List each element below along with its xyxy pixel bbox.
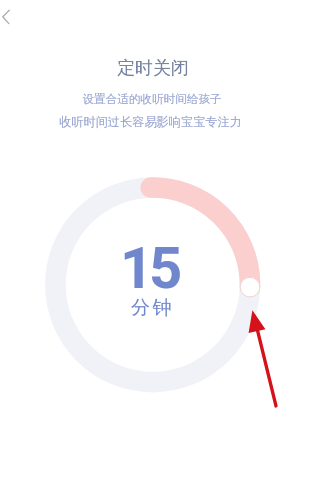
staticText: 5	[149, 234, 183, 302]
button[interactable]: Timer duration dial, 15 minutes	[45, 177, 261, 393]
staticText: 定时关闭	[117, 57, 189, 80]
staticText: 收听时间过长容易影响宝宝专注力	[59, 114, 242, 129]
staticText: 1	[120, 234, 154, 302]
staticText: 分钟	[131, 296, 175, 320]
staticText: 设置合适的收听时间给孩子	[82, 92, 222, 107]
button[interactable]: Drag to change duration	[240, 277, 261, 298]
button[interactable]: Back	[0, 4, 26, 30]
